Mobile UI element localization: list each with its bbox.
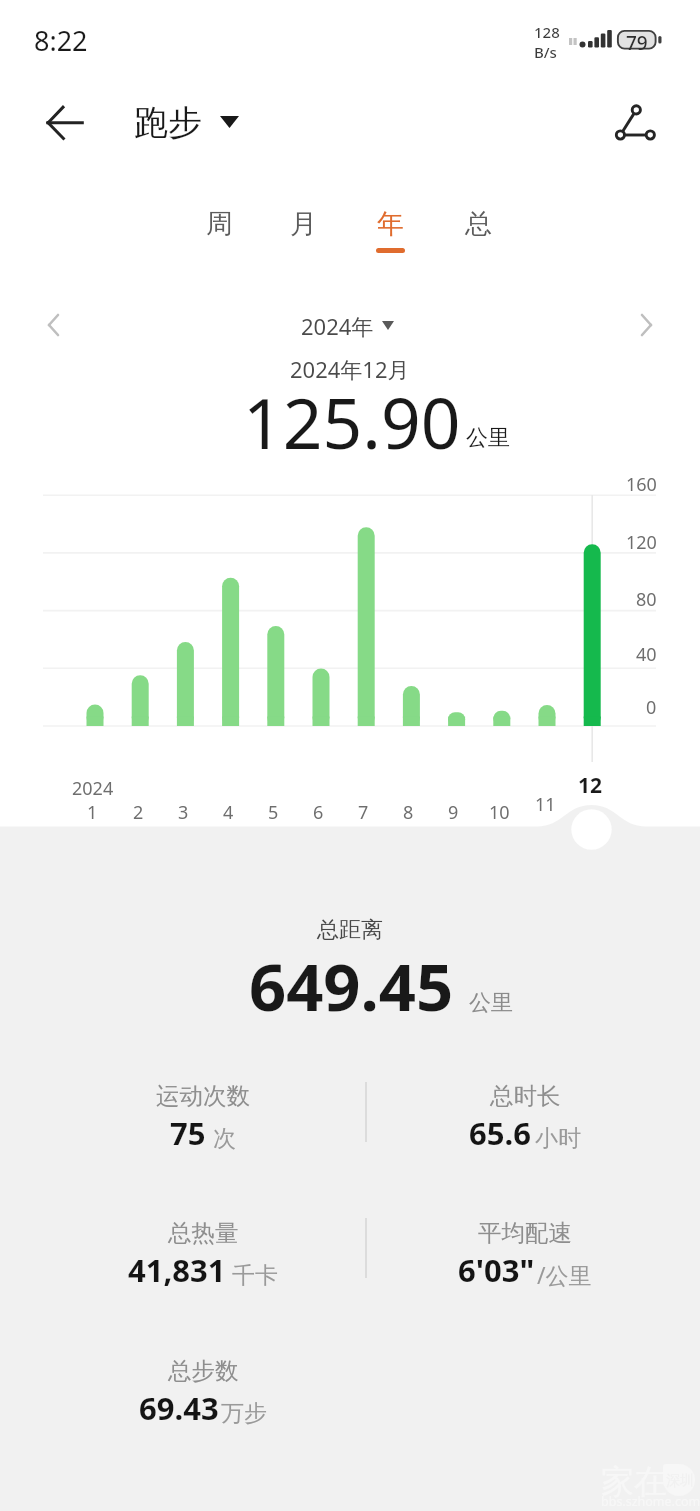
staticText: 总热量 xyxy=(168,1218,239,1248)
staticText: 次 xyxy=(213,1124,236,1153)
staticText: 7 xyxy=(358,800,369,825)
staticText: 69.43 xyxy=(139,1387,219,1429)
button[interactable]: Previous year xyxy=(32,302,78,348)
staticText: 11 xyxy=(535,792,556,817)
staticText: 公里 xyxy=(466,424,510,452)
staticText: 160 xyxy=(626,472,657,497)
staticText: 6 xyxy=(313,800,324,825)
staticText: 2024年12月 xyxy=(290,354,410,384)
button[interactable]: 周 xyxy=(179,200,259,262)
button[interactable]: 总步数 xyxy=(53,1350,353,1442)
staticText: 千卡 xyxy=(232,1261,278,1290)
button[interactable]: Share xyxy=(604,94,662,152)
staticText: 6'03" xyxy=(458,1249,535,1291)
staticText: 年 xyxy=(377,207,404,241)
staticText: 公里 xyxy=(469,989,513,1017)
staticText: /公里 xyxy=(537,1259,592,1290)
staticText: 总步数 xyxy=(168,1356,239,1386)
staticText: 小时 xyxy=(535,1124,581,1153)
staticText: 平均配速 xyxy=(478,1218,572,1248)
button[interactable]: 跑步 xyxy=(134,101,202,144)
staticText: 周 xyxy=(206,207,233,241)
staticText: 8 xyxy=(403,800,414,825)
staticText: 运动次数 xyxy=(156,1081,250,1111)
staticText: 2024 xyxy=(72,776,114,801)
staticText: 79 xyxy=(626,30,648,50)
staticText: 3 xyxy=(178,800,189,825)
staticText: 40 xyxy=(636,642,657,667)
staticText: 2024年 xyxy=(301,311,374,341)
button[interactable]: Back xyxy=(36,96,94,154)
staticText: 649.45 xyxy=(249,942,454,1031)
staticText: 4 xyxy=(223,800,234,825)
staticText: 128 xyxy=(534,22,560,42)
staticText: 总时长 xyxy=(490,1081,561,1111)
button[interactable]: 总时长 xyxy=(375,1075,675,1167)
staticText: 125.90 xyxy=(243,375,461,470)
staticText: 80 xyxy=(636,587,657,612)
button[interactable]: Select year xyxy=(377,314,399,336)
staticText: 万步 xyxy=(221,1399,267,1428)
staticText: 41,831 xyxy=(128,1249,226,1291)
staticText: 120 xyxy=(626,530,657,555)
staticText: 12 xyxy=(578,771,603,800)
staticText: 2 xyxy=(133,800,144,825)
staticText: 跑步 xyxy=(134,101,202,144)
staticText: 9 xyxy=(448,800,459,825)
button[interactable]: 平均配速 xyxy=(375,1212,675,1304)
button[interactable]: Next year xyxy=(622,302,668,348)
staticText: 1 xyxy=(87,800,98,825)
staticText: 总 xyxy=(465,207,492,241)
staticText: 65.6 xyxy=(469,1112,531,1154)
staticText: 5 xyxy=(268,800,279,825)
button[interactable]: 月 xyxy=(263,200,343,262)
staticText: 10 xyxy=(489,800,510,825)
staticText: 0 xyxy=(646,695,657,720)
staticText: 总距离 xyxy=(317,916,383,944)
button[interactable]: 年 xyxy=(350,200,430,262)
staticText: 8:22 xyxy=(34,22,88,59)
staticText: B/s xyxy=(534,42,557,62)
button[interactable]: Change activity type xyxy=(213,108,245,136)
button[interactable]: 总 xyxy=(438,200,518,262)
button[interactable]: 总热量 xyxy=(53,1212,353,1304)
button[interactable]: 运动次数 xyxy=(53,1075,353,1167)
staticText: 月 xyxy=(290,207,317,241)
button[interactable]: 2024年 xyxy=(301,311,374,341)
staticText: 75 xyxy=(170,1112,206,1154)
